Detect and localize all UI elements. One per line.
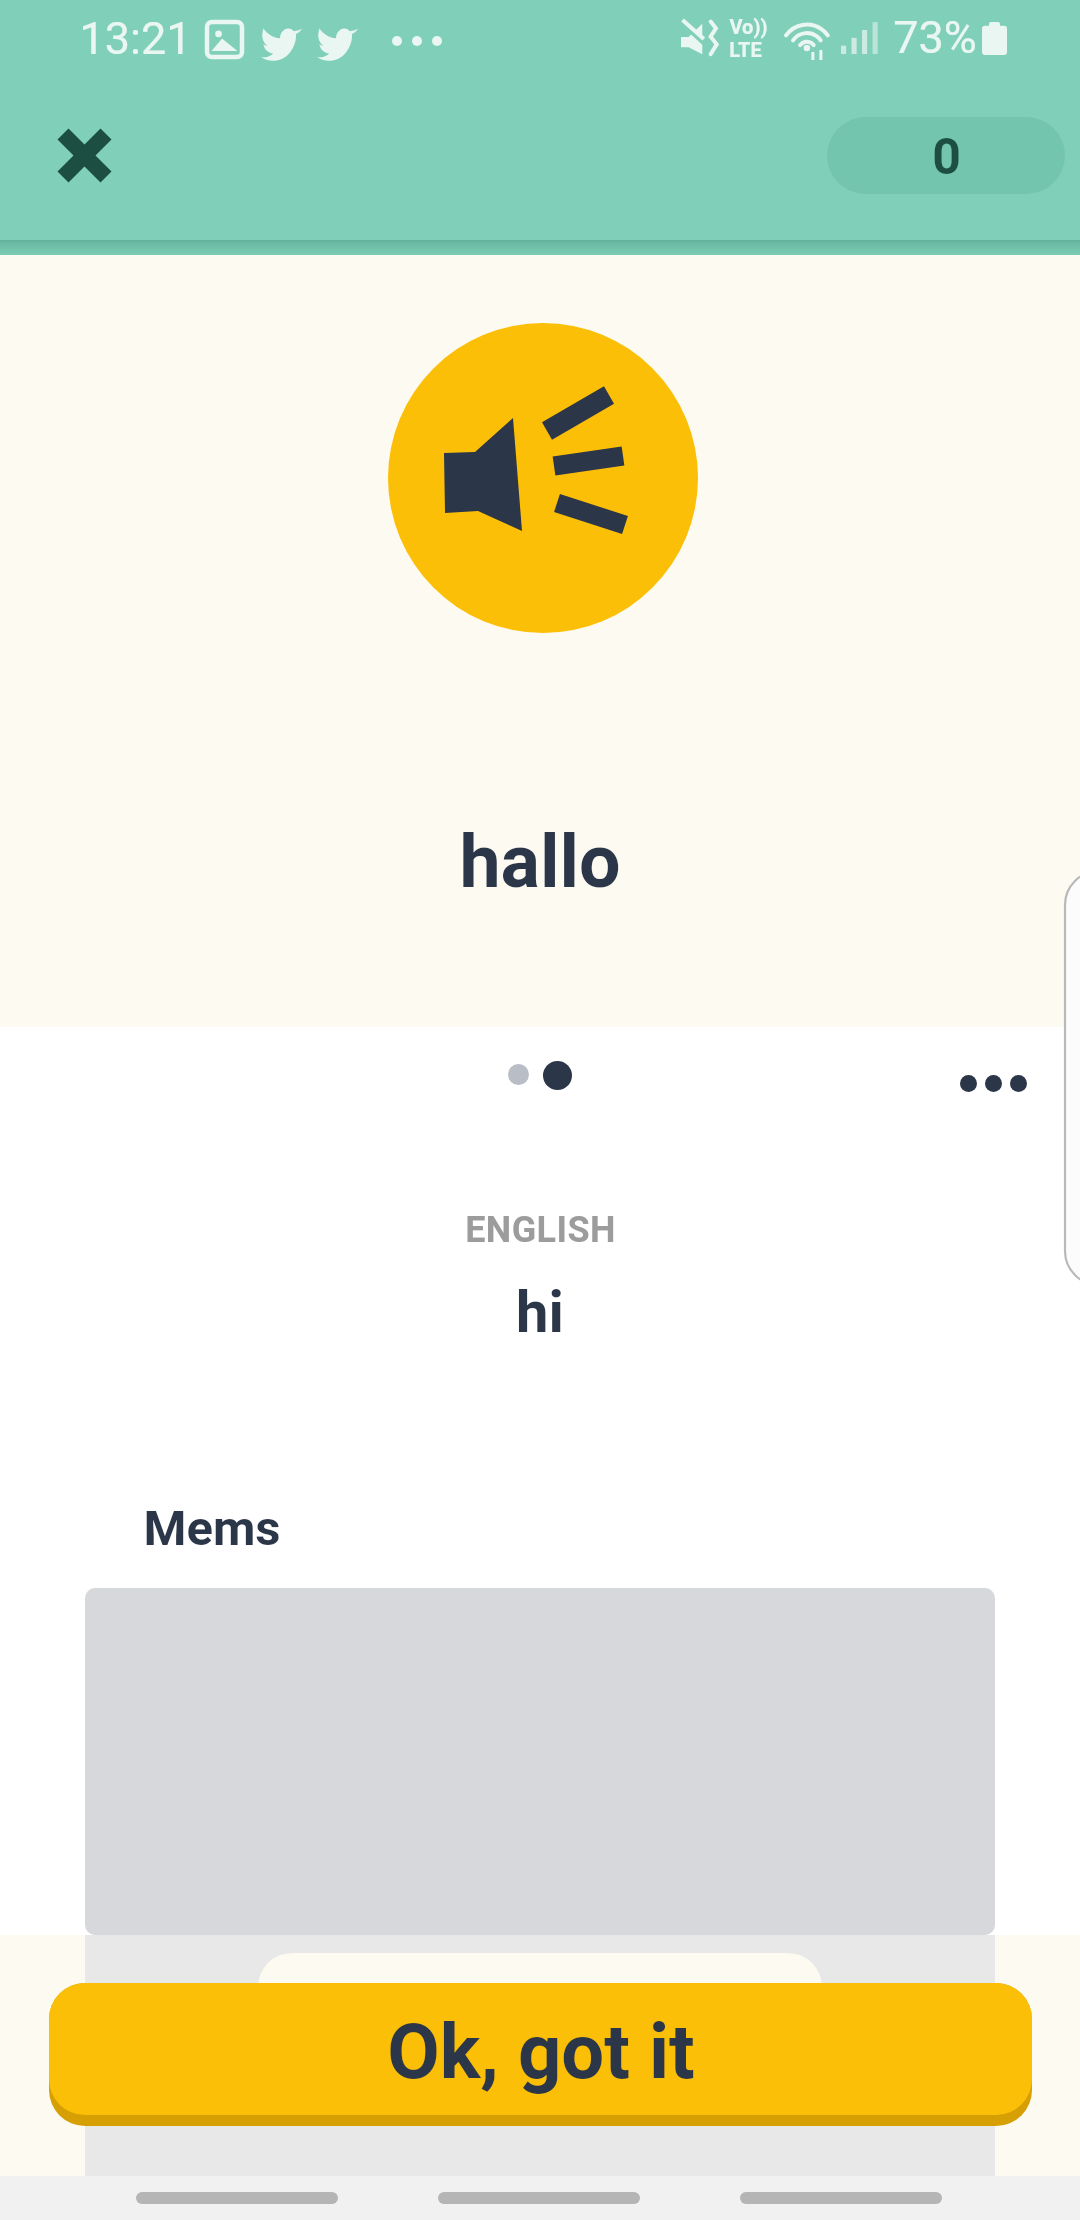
button[interactable]: Play audio (388, 323, 698, 633)
staticText: Mems (143, 1500, 281, 1557)
staticText: hallo (459, 819, 621, 905)
staticText: 13:21 (79, 12, 192, 65)
button[interactable]: More options (930, 1035, 1056, 1131)
staticText: LTE (729, 38, 762, 61)
button[interactable]: 0 (827, 117, 1065, 194)
staticText: 73% (893, 11, 977, 64)
staticText: ENGLISH (465, 1209, 616, 1251)
staticText: hi (516, 1278, 564, 1346)
button[interactable]: Close (24, 95, 144, 215)
button[interactable]: Ok, got it (49, 1983, 1032, 2115)
staticText: Ok, got it (387, 2007, 695, 2096)
staticText: Vo)) (729, 15, 768, 38)
staticText: 0 (932, 128, 961, 187)
